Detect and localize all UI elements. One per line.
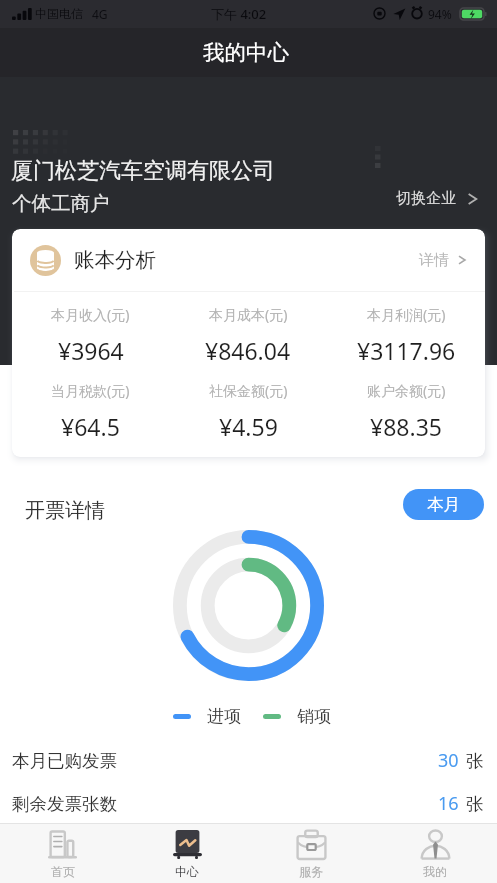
staticText: 94% (428, 6, 452, 22)
staticText: 我的中心 (203, 39, 289, 66)
staticText: ¥64.5 (61, 411, 120, 442)
button[interactable]: 切换企业 (392, 184, 482, 213)
staticText: 本月已购发票 (12, 750, 117, 772)
staticText: 16 (438, 791, 459, 816)
staticText: 我的 (423, 864, 447, 879)
staticText: 张 (466, 793, 484, 815)
staticText: ¥3964 (58, 335, 124, 366)
staticText: 中国电信 (35, 6, 83, 21)
staticText: 4G (92, 6, 108, 22)
button[interactable]: 我的 (373, 824, 497, 883)
staticText: 下午 4:02 (211, 5, 267, 23)
button[interactable]: 本月已购发票 (0, 739, 497, 782)
staticText: ¥88.35 (370, 411, 442, 442)
staticText: 销项 (297, 706, 331, 727)
staticText: ¥3117.96 (357, 335, 456, 366)
button[interactable]: 本月 (403, 489, 484, 520)
staticText: 账户余额(元) (367, 381, 446, 400)
staticText: 中心 (175, 864, 199, 879)
staticText: 开票详情 (25, 498, 105, 523)
staticText: 本月成本(元) (209, 305, 288, 324)
staticText: 厦门松芝汽车空调有限公司 (11, 157, 275, 185)
staticText: 详情 (419, 251, 449, 270)
staticText: ¥4.59 (219, 411, 278, 442)
button[interactable]: 首页 (0, 824, 125, 883)
staticText: 个体工商户 (12, 191, 110, 216)
staticText: 切换企业 (396, 189, 456, 208)
staticText: 社保金额(元) (209, 381, 288, 400)
staticText: 首页 (51, 864, 75, 879)
staticText: 账本分析 (74, 247, 156, 273)
button[interactable]: 剩余发票张数 (0, 782, 497, 825)
staticText: 本月 (427, 494, 460, 515)
button[interactable]: 账本分析 (12, 229, 485, 291)
staticText: 服务 (299, 864, 323, 879)
button[interactable]: 服务 (249, 824, 373, 883)
staticText: ¥846.04 (205, 335, 291, 366)
staticText: 30 (438, 748, 459, 773)
staticText: 进项 (207, 706, 241, 727)
staticText: 本月收入(元) (51, 305, 130, 324)
staticText: 当月税款(元) (51, 381, 130, 400)
button[interactable]: 中心 (125, 824, 249, 883)
staticText: 本月利润(元) (367, 305, 446, 324)
staticText: 剩余发票张数 (12, 793, 117, 815)
staticText: 张 (466, 750, 484, 772)
